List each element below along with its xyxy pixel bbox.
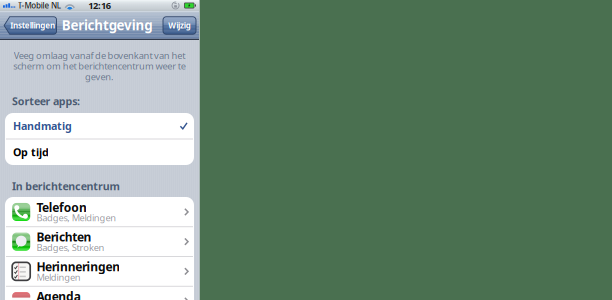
staticText: Op tijd [13,145,49,159]
staticText: Agenda [36,288,81,300]
staticText: Berichten [36,229,92,245]
staticText: T-Mobile NL [18,0,61,11]
button[interactable]: Instellingen [3,17,56,34]
staticText: 12:16 [88,0,111,12]
button[interactable]: Berichten [5,227,194,256]
button[interactable]: Wijzig [163,17,196,34]
staticText: Badges, Meldingen [36,211,116,224]
staticText: geven. [85,70,114,83]
button[interactable]: Agenda [5,287,194,300]
staticText: Telefoon [36,199,87,215]
staticText: Herinneringen [36,259,120,275]
staticText: Veeg omlaag vanaf de bovenkant van het [14,49,185,62]
staticText: Handmatig [13,119,72,133]
staticText: scherm om het berichtencentrum weer te [13,60,186,72]
staticText: Wijzig [168,20,191,31]
staticText: Meldingen [36,271,81,283]
staticText: Sorteer apps: [12,94,80,108]
button[interactable]: Herinneringen [5,257,194,286]
staticText: In berichtencentrum [12,179,119,193]
button[interactable]: Telefoon [5,197,194,226]
button[interactable]: Handmatig [5,113,194,139]
staticText: Berichtgeving [62,16,152,34]
staticText: Badges, Stroken [36,241,105,254]
button[interactable]: Op tijd [5,139,194,165]
staticText: Instellingen [10,20,55,31]
